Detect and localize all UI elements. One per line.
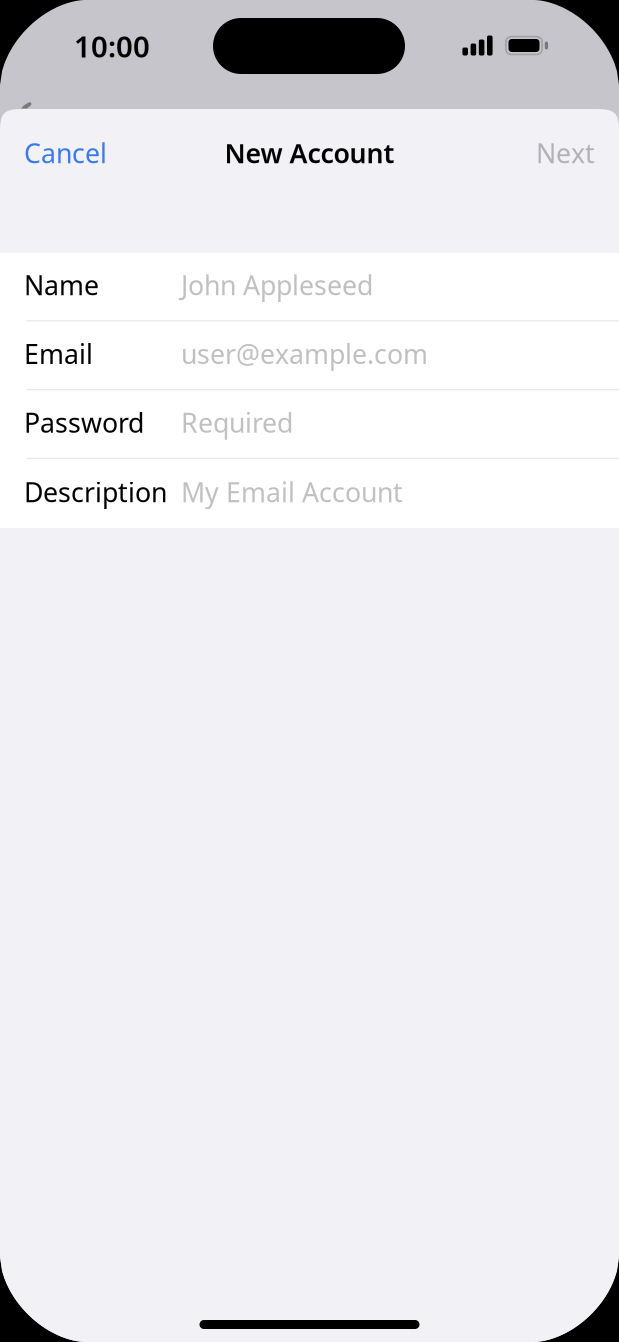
- staticText: Cancel: [24, 135, 107, 171]
- staticText: Email: [24, 336, 93, 371]
- staticText: Name: [24, 267, 99, 303]
- staticText: My Email Account: [181, 474, 403, 510]
- button[interactable]: Cancel: [0, 118, 129, 188]
- staticText: Required: [181, 405, 293, 440]
- staticText: Description: [24, 474, 167, 510]
- staticText: user@example.com: [181, 336, 428, 371]
- staticText: 10:00: [74, 26, 150, 65]
- staticText: Password: [24, 405, 144, 440]
- staticText: John Appleseed: [181, 267, 373, 303]
- button[interactable]: Next: [514, 118, 619, 188]
- staticText: New Account: [224, 135, 394, 171]
- staticText: Next: [536, 135, 595, 171]
